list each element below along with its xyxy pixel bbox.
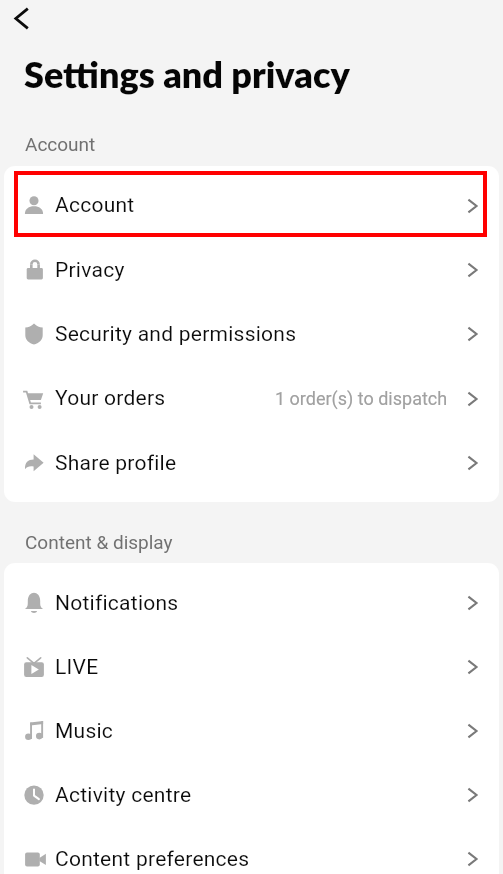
button[interactable]: Activity centre <box>4 763 499 827</box>
button[interactable]: Account <box>4 173 499 238</box>
staticText: Content & display <box>25 531 173 553</box>
staticText: Activity centre <box>55 783 192 808</box>
button[interactable]: Your orders <box>4 366 499 431</box>
staticText: LIVE <box>55 655 99 680</box>
staticText: Account <box>25 133 96 155</box>
staticText: 1 order(s) to dispatch <box>275 388 448 409</box>
button[interactable]: LIVE <box>4 635 499 699</box>
staticText: Account <box>55 193 135 218</box>
staticText: Content preferences <box>55 847 250 872</box>
staticText: Privacy <box>55 258 125 283</box>
button[interactable]: Security and permissions <box>4 302 499 366</box>
staticText: Security and permissions <box>55 322 297 347</box>
button[interactable]: Content preferences <box>4 827 499 874</box>
staticText: Music <box>55 719 114 744</box>
button[interactable]: Share profile <box>4 431 499 495</box>
staticText: Notifications <box>55 591 179 616</box>
button[interactable]: Notifications <box>4 571 499 635</box>
button[interactable]: Back <box>4 1 38 35</box>
button[interactable]: Privacy <box>4 238 499 302</box>
staticText: Your orders <box>55 386 166 411</box>
button[interactable]: Music <box>4 699 499 763</box>
staticText: Settings and privacy <box>24 52 350 95</box>
staticText: Share profile <box>55 451 177 476</box>
